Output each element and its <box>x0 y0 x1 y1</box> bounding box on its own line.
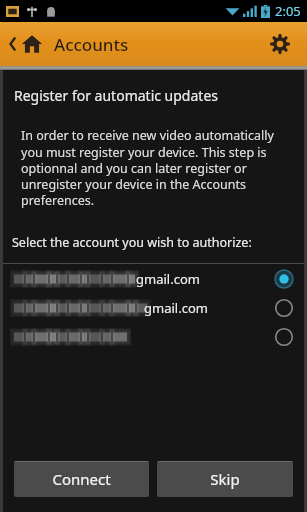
button[interactable]: Connect <box>14 461 149 497</box>
button[interactable]: Navigate up, Home <box>6 29 46 59</box>
staticText: gmail.com <box>136 270 200 288</box>
button[interactable]: Skip <box>157 461 293 497</box>
button[interactable]: Settings <box>263 27 297 61</box>
staticText: In order to receive new video automatica… <box>21 127 295 208</box>
staticText: Select the account you wish to authorize… <box>12 234 252 251</box>
staticText: gmail.com <box>144 299 208 317</box>
button[interactable] <box>0 322 307 351</box>
staticText: Connect <box>52 469 111 489</box>
button[interactable]: gmail.com <box>0 293 307 322</box>
staticText: Accounts <box>54 33 129 56</box>
staticText: 2:05 <box>275 2 301 20</box>
button[interactable]: gmail.com <box>0 264 307 293</box>
staticText: Skip <box>210 469 240 489</box>
staticText: Register for automatic updates <box>14 86 218 105</box>
